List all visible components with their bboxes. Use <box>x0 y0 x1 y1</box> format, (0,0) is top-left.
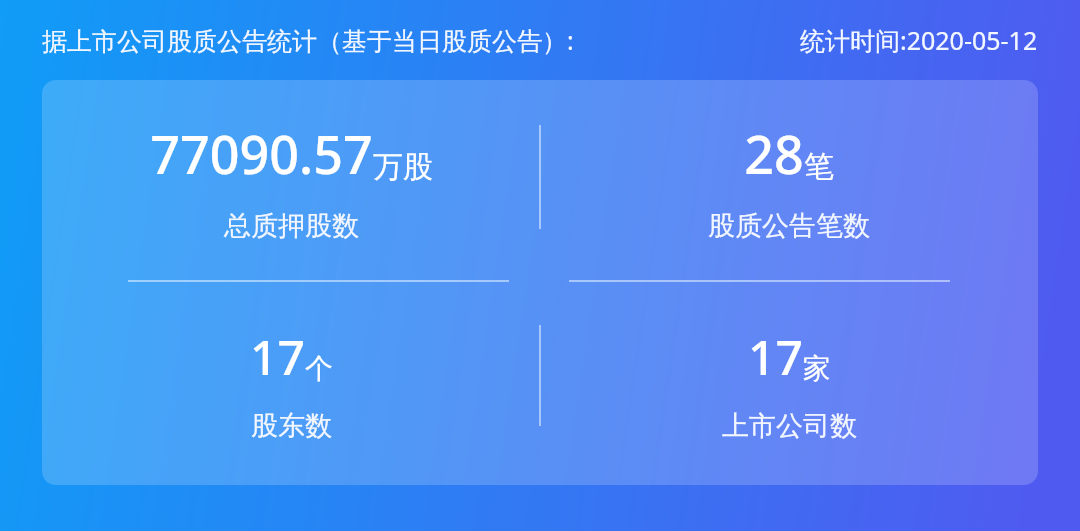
button[interactable]: 77090.57 <box>42 80 540 280</box>
staticText: 据上市公司股质公告统计（基于当日股质公告）: <box>42 23 574 57</box>
staticText: 笔 <box>804 148 834 186</box>
staticText: 77090.57 <box>150 118 373 189</box>
staticText: 家 <box>803 351 831 386</box>
staticText: 17 <box>748 324 803 389</box>
button[interactable]: 28 <box>540 80 1038 280</box>
staticText: 万股 <box>373 148 433 186</box>
staticText: 28 <box>744 118 804 189</box>
button[interactable]: 77090.57 <box>42 80 1038 485</box>
staticText: 17 <box>250 324 305 389</box>
staticText: 股东数 <box>251 409 332 443</box>
staticText: 个 <box>305 351 333 386</box>
staticText: 上市公司数 <box>722 409 857 443</box>
staticText: 股质公告笔数 <box>708 209 870 243</box>
staticText: 统计时间:2020-05-12 <box>800 23 1038 57</box>
button[interactable]: 17 <box>540 282 1038 485</box>
button[interactable]: 17 <box>42 282 540 485</box>
staticText: 总质押股数 <box>224 209 359 243</box>
